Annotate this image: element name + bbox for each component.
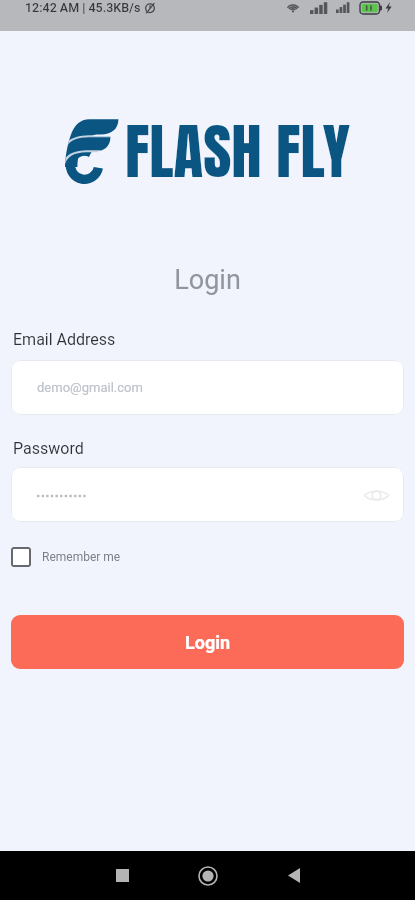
staticText: Remember me bbox=[42, 550, 121, 564]
button[interactable]: demo@gmail.com bbox=[11, 360, 404, 415]
staticText: 12:42 AM | 45.3KB/s bbox=[25, 0, 141, 15]
staticText: Email Address bbox=[13, 330, 116, 349]
button[interactable]: Remember me bbox=[11, 547, 121, 567]
staticText: FLASH FLY bbox=[125, 105, 350, 181]
button[interactable]: Back bbox=[264, 851, 324, 900]
button[interactable]: Login bbox=[11, 615, 404, 669]
button[interactable]: Home bbox=[178, 851, 238, 900]
staticText: Password bbox=[13, 439, 84, 458]
staticText: Login bbox=[0, 264, 415, 296]
staticText: Login bbox=[185, 632, 231, 653]
button[interactable]: Show password bbox=[11, 467, 404, 522]
button[interactable]: Show password bbox=[362, 483, 390, 507]
button[interactable]: Recents bbox=[92, 851, 152, 900]
staticText: demo@gmail.com bbox=[37, 380, 143, 395]
